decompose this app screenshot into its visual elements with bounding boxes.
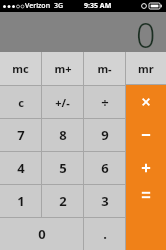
button[interactable]: 9 [84, 119, 125, 151]
staticText: . [103, 225, 107, 243]
button[interactable]: +/- [42, 86, 83, 118]
staticText: 9 [101, 126, 109, 144]
button[interactable]: 3 [84, 185, 125, 217]
button[interactable]: Add [126, 151, 166, 184]
staticText: 7 [17, 126, 25, 144]
staticText: mr [138, 61, 154, 76]
staticText: 2 [59, 192, 67, 210]
button[interactable]: m+ [42, 52, 83, 85]
button[interactable]: 8 [42, 119, 83, 151]
staticText: m- [97, 61, 112, 76]
staticText: ÷ [101, 93, 109, 111]
staticText: 5 [59, 159, 67, 177]
button[interactable]: 4 [0, 152, 41, 184]
staticText: 8 [59, 126, 67, 144]
button[interactable]: m- [84, 52, 125, 85]
staticText: 3 [101, 192, 109, 210]
button[interactable]: 1 [0, 185, 41, 217]
button[interactable]: 5 [42, 152, 83, 184]
staticText: 0 [38, 225, 46, 243]
staticText: m+ [54, 61, 72, 76]
button[interactable]: Multiply [126, 85, 166, 118]
button[interactable]: . [84, 218, 125, 250]
button[interactable]: 6 [84, 152, 125, 184]
button[interactable]: 7 [0, 119, 41, 151]
button[interactable]: 0 [0, 218, 83, 250]
staticText: 9:35 AM [84, 1, 112, 11]
button[interactable]: Subtract [126, 118, 166, 151]
button[interactable]: mc [0, 52, 41, 85]
button[interactable]: mr [126, 52, 166, 84]
staticText: 4 [17, 159, 25, 177]
staticText: 1 [17, 192, 25, 210]
button[interactable]: 2 [42, 185, 83, 217]
staticText: Verizon [25, 1, 51, 11]
staticText: c [18, 95, 24, 110]
staticText: mc [12, 61, 29, 76]
staticText: 3G [54, 1, 64, 11]
staticText: +/- [55, 95, 70, 110]
button[interactable]: c [0, 86, 41, 118]
staticText: 6 [101, 159, 109, 177]
button[interactable]: ÷ [84, 86, 125, 118]
staticText: 0 [136, 12, 156, 50]
button[interactable]: Equals [126, 184, 166, 250]
